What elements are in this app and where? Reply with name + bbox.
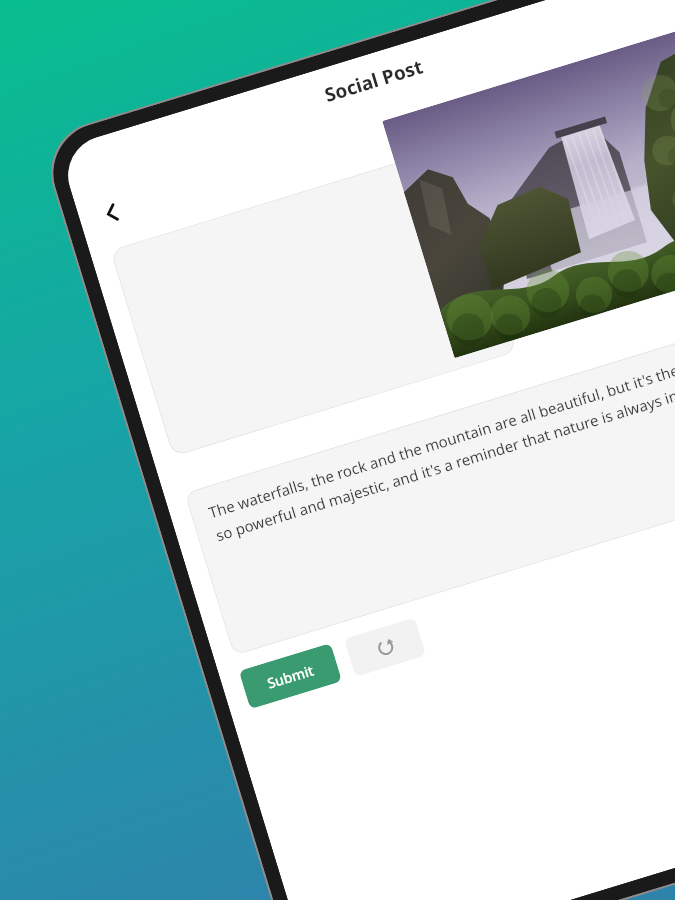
button[interactable]: Submit bbox=[239, 643, 342, 709]
staticText: Social Post bbox=[321, 53, 426, 108]
button[interactable]: Waterfall photo bbox=[382, 26, 675, 358]
button[interactable] bbox=[110, 145, 517, 457]
staticText: The waterfalls, the rock and the mountai… bbox=[206, 332, 675, 545]
staticText: Submit bbox=[265, 660, 316, 693]
button[interactable]: Back bbox=[83, 184, 141, 242]
button[interactable]: The waterfalls, the rock and the mountai… bbox=[184, 312, 675, 656]
button[interactable]: Refresh bbox=[344, 617, 426, 677]
